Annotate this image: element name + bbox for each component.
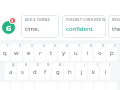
button[interactable]: t <box>46 44 57 61</box>
button[interactable]: j <box>76 63 87 80</box>
button[interactable]: q <box>0 44 10 61</box>
staticText: u <box>74 49 78 57</box>
staticText: t <box>50 49 53 57</box>
staticText: % <box>47 63 50 67</box>
button[interactable]: r <box>35 44 46 61</box>
staticText: f <box>44 68 47 76</box>
staticText: ( <box>97 63 98 67</box>
staticText: confident <box>66 25 93 33</box>
staticText: 0 <box>114 44 116 48</box>
staticText: w <box>14 49 19 57</box>
staticText: 6 <box>66 44 68 48</box>
staticText: the fact <box>112 25 120 33</box>
staticText: j <box>81 68 83 76</box>
staticText: & <box>59 63 62 67</box>
staticText: g <box>56 68 60 76</box>
button[interactable]: p <box>106 44 117 61</box>
button[interactable]: o <box>94 44 105 61</box>
button[interactable]: k <box>88 63 99 80</box>
staticText: @ <box>12 63 15 67</box>
button[interactable]: g <box>52 63 63 80</box>
staticText: 9 <box>102 44 104 48</box>
button[interactable]: h <box>64 63 75 80</box>
staticText: G <box>6 23 12 33</box>
staticText: k <box>92 68 96 76</box>
button[interactable]: d <box>29 63 40 80</box>
staticText: POSSIBLY CONFUSED WORD <box>66 18 106 22</box>
staticText: e <box>27 49 31 57</box>
staticText: ADD A COMMA <box>25 18 50 22</box>
staticText: r <box>39 49 42 57</box>
staticText: s <box>21 68 24 76</box>
staticText: i <box>87 49 89 57</box>
staticText: o <box>98 49 102 57</box>
staticText: h <box>68 68 72 76</box>
button[interactable]: s <box>17 63 28 80</box>
staticText: 3 <box>31 44 33 48</box>
staticText: $ <box>37 63 39 67</box>
staticText: time, <box>25 25 40 33</box>
button[interactable]: w <box>11 44 22 61</box>
staticText: 1 <box>7 44 9 48</box>
button[interactable]: G <box>2 21 15 34</box>
staticText: q <box>3 49 7 57</box>
staticText: a <box>9 68 13 76</box>
staticText: 5 <box>54 44 56 48</box>
staticText: MISSING WORD <box>112 18 120 22</box>
button[interactable]: a <box>5 63 16 80</box>
staticText: 4 <box>43 44 45 48</box>
button[interactable]: MISSING WORD <box>108 15 120 38</box>
button[interactable]: f <box>40 63 51 80</box>
button[interactable]: e <box>23 44 34 61</box>
staticText: d <box>33 68 37 76</box>
button[interactable]: ADD A COMMA <box>21 15 59 38</box>
button[interactable]: i <box>82 44 93 61</box>
staticText: 8 <box>90 44 92 48</box>
staticText: - <box>73 63 74 67</box>
button[interactable]: u <box>70 44 81 61</box>
button[interactable]: l <box>100 63 111 80</box>
staticText: 3 <box>11 18 14 23</box>
staticText: p <box>110 49 114 57</box>
staticText: 7 <box>78 44 80 48</box>
staticText: 2 <box>19 44 21 48</box>
staticText: # <box>25 63 27 67</box>
staticText: + <box>84 63 86 67</box>
staticText: l <box>105 68 107 76</box>
staticText: y <box>62 49 66 57</box>
staticText: ) <box>109 63 110 67</box>
button[interactable]: y <box>58 44 69 61</box>
button[interactable]: POSSIBLY CONFUSED WORD <box>62 15 106 38</box>
